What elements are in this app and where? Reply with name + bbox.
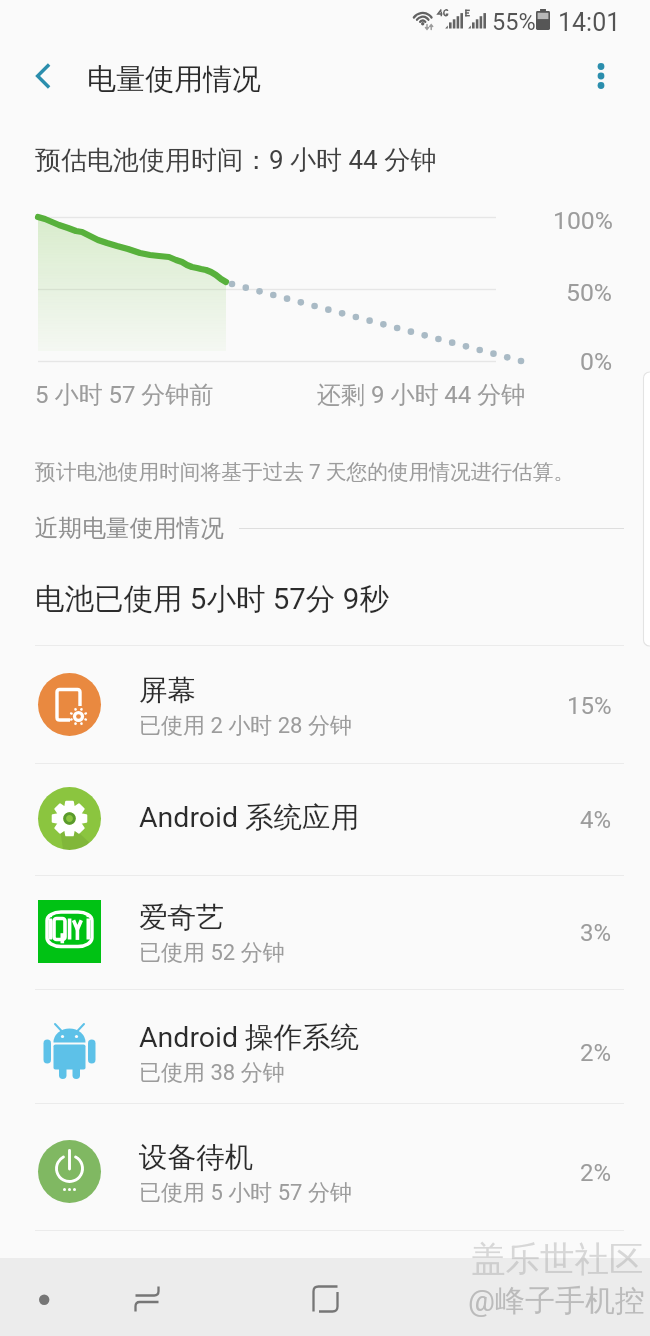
staticText: Android 操作系统 bbox=[139, 1020, 360, 1056]
staticText: 0% bbox=[580, 347, 613, 376]
staticText: 14:01 bbox=[558, 8, 621, 37]
staticText: 15% bbox=[567, 692, 612, 720]
staticText: 5 小时 57 分钟前 bbox=[35, 380, 214, 410]
staticText: 已使用 52 分钟 bbox=[139, 939, 285, 967]
staticText: 还剩 9 小时 44 分钟 bbox=[317, 380, 526, 410]
staticText: Android 系统应用 bbox=[139, 800, 360, 836]
staticText: 2% bbox=[580, 1159, 612, 1187]
staticText: 100% bbox=[553, 206, 613, 235]
staticText: 爱奇艺 bbox=[139, 900, 225, 936]
button[interactable]: 爱奇艺 bbox=[0, 875, 650, 989]
staticText: 已使用 5 小时 57 分钟 bbox=[139, 1179, 352, 1207]
button[interactable]: Android 系统应用 bbox=[0, 763, 650, 875]
button[interactable]: Home bbox=[268, 1258, 388, 1336]
staticText: 已使用 38 分钟 bbox=[139, 1059, 285, 1087]
staticText: 3% bbox=[580, 919, 612, 947]
staticText: 电量使用情况 bbox=[87, 61, 261, 98]
staticText: 近期电量使用情况 bbox=[35, 513, 224, 543]
button[interactable]: Android 操作系统 bbox=[0, 989, 650, 1103]
staticText: 2% bbox=[580, 1039, 612, 1067]
staticText: 设备待机 bbox=[139, 1140, 253, 1176]
staticText: 50% bbox=[566, 278, 613, 307]
button[interactable]: More options bbox=[573, 48, 629, 104]
button[interactable]: Back bbox=[0, 1258, 88, 1336]
staticText: 预计电池使用时间将基于过去 7 天您的使用情况进行估算。 bbox=[35, 459, 575, 485]
button[interactable]: 设备待机 bbox=[0, 1103, 650, 1230]
staticText: 55% bbox=[492, 8, 536, 36]
staticText: 屏幕 bbox=[139, 673, 196, 709]
button[interactable]: Back bbox=[16, 48, 72, 104]
button[interactable]: 屏幕 bbox=[0, 645, 650, 763]
staticText: 电池已使用 5小时 57分 9秒 bbox=[35, 581, 389, 618]
staticText: 盖乐世社区 bbox=[471, 1238, 644, 1281]
staticText: 预估电池使用时间：9 小时 44 分钟 bbox=[35, 144, 437, 177]
staticText: @峰子手机控 bbox=[468, 1282, 645, 1320]
button[interactable]: Recent apps bbox=[88, 1258, 208, 1336]
staticText: 已使用 2 小时 28 分钟 bbox=[139, 712, 352, 740]
staticText: 4% bbox=[580, 806, 612, 834]
